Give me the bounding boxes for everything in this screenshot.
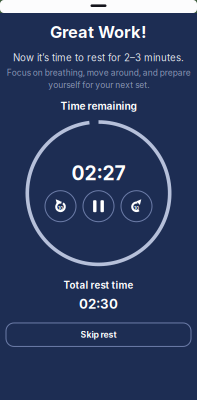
staticText: Skip rest [80, 329, 116, 340]
button[interactable]: Skip rest [6, 323, 191, 346]
staticText: Time remaining [60, 100, 136, 112]
button[interactable]: Forward 10 seconds [121, 191, 152, 222]
button[interactable]: Pause [83, 191, 114, 222]
staticText: 02:30 [79, 296, 118, 312]
staticText: 02:27 [71, 161, 125, 185]
button[interactable]: Back 10 seconds [45, 191, 76, 222]
staticText: Now it’s time to rest for 2–3 minutes. [13, 52, 184, 64]
staticText: 10 [134, 206, 139, 211]
staticText: 10 [58, 206, 63, 211]
staticText: Focus on breathing, move around, and pre… [6, 68, 190, 90]
staticText: Total rest time [63, 279, 133, 291]
staticText: Great Work! [50, 22, 147, 42]
